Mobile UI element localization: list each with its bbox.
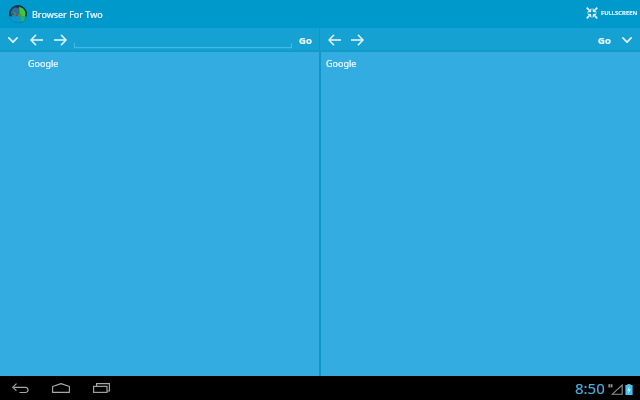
button[interactable]: Back <box>325 28 344 52</box>
staticText: FULLSCREEN <box>601 9 638 17</box>
button[interactable]: Forward <box>50 28 69 52</box>
button[interactable]: Show tabs <box>619 28 635 52</box>
button[interactable]: Forward <box>347 28 366 52</box>
button[interactable]: Back <box>8 376 32 400</box>
button[interactable]: Go <box>595 29 613 51</box>
staticText: Browser For Two <box>32 8 103 20</box>
button[interactable]: Back <box>27 28 46 52</box>
button[interactable]: Home <box>49 376 73 400</box>
button[interactable]: Go <box>296 29 314 51</box>
staticText: 8:50 <box>575 378 605 398</box>
button[interactable]: Show tabs <box>5 28 21 52</box>
button[interactable]: Browser For Two <box>9 5 103 23</box>
staticText: Google <box>28 57 59 69</box>
button[interactable]: Recents <box>89 376 113 400</box>
staticText: Go <box>598 34 611 47</box>
button[interactable] <box>74 28 292 52</box>
button[interactable]: FULLSCREEN <box>586 7 638 19</box>
staticText: Google <box>326 57 357 69</box>
staticText: Go <box>299 34 312 47</box>
